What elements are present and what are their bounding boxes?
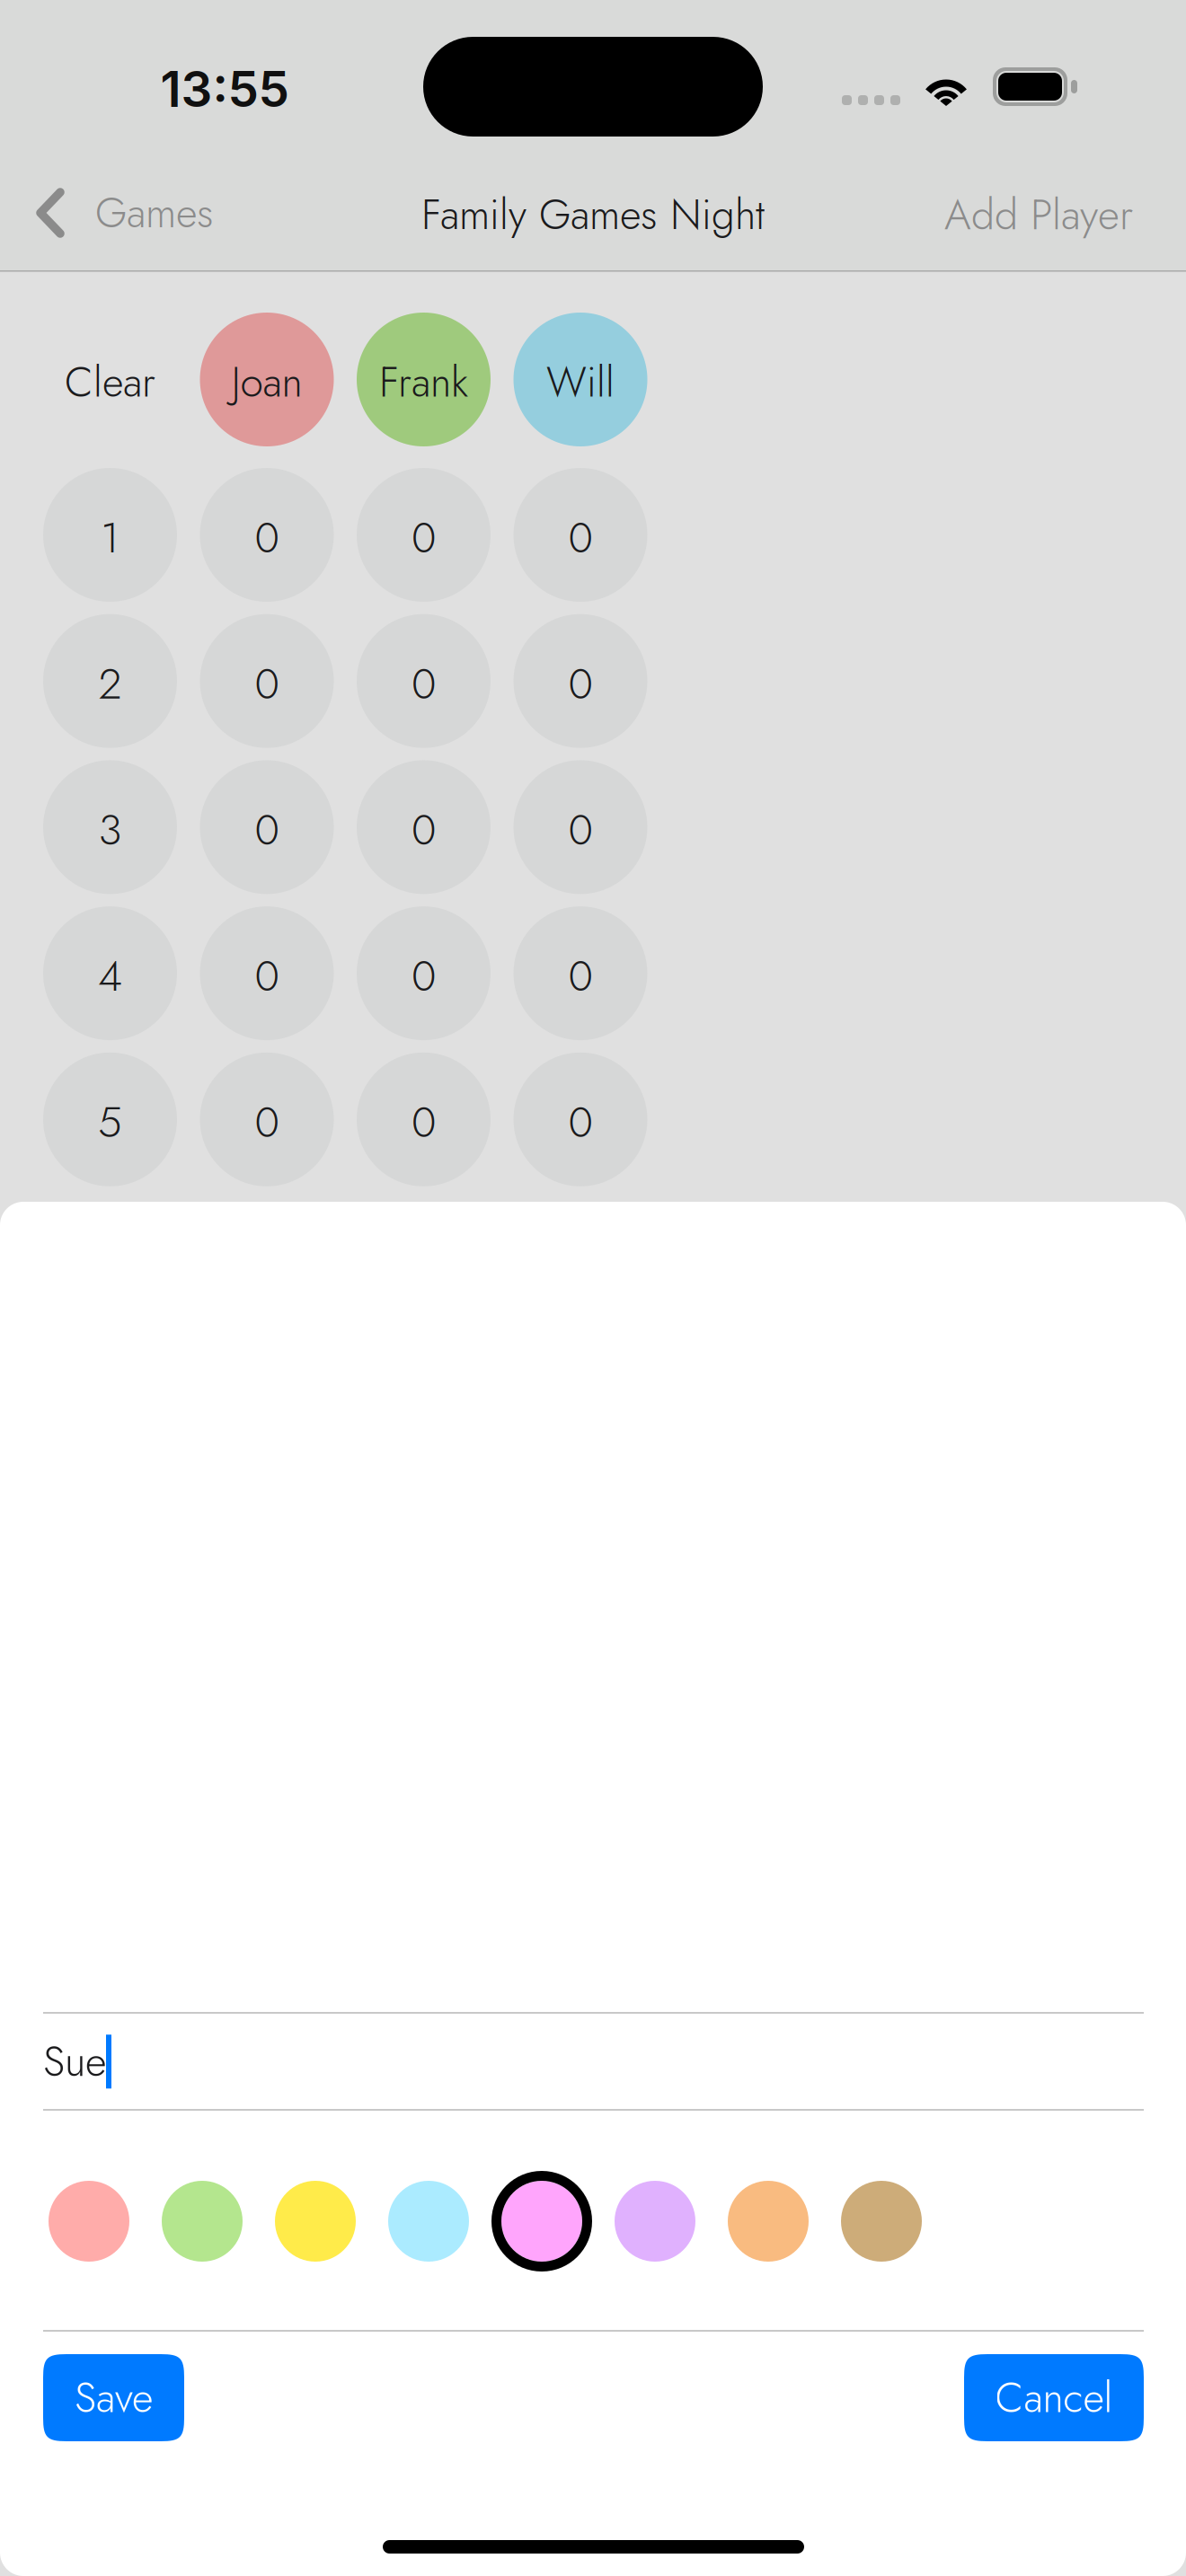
staticText: 0 <box>412 653 436 714</box>
button[interactable]: Add Player <box>890 166 1133 263</box>
staticText: 0 <box>568 1091 593 1153</box>
button[interactable]: Lavender <box>615 2181 695 2262</box>
button[interactable]: 0 <box>513 614 647 748</box>
button[interactable]: 4 <box>43 906 177 1040</box>
staticText: 0 <box>255 507 279 568</box>
staticText: 0 <box>255 653 279 714</box>
button[interactable]: Light blue <box>388 2181 469 2262</box>
button[interactable]: Joan <box>200 313 334 446</box>
button[interactable]: 0 <box>513 760 647 894</box>
staticText: Games <box>95 183 214 243</box>
button[interactable]: 0 <box>357 468 491 602</box>
button[interactable]: 0 <box>200 614 334 748</box>
button[interactable]: 2 <box>43 614 177 748</box>
staticText: Will <box>546 352 615 412</box>
button[interactable]: Will <box>513 313 647 446</box>
button[interactable]: 0 <box>200 1052 334 1186</box>
staticText: Sue <box>43 2032 106 2091</box>
button[interactable]: Clear <box>43 313 177 446</box>
button[interactable]: Orange <box>728 2181 809 2262</box>
button[interactable]: 1 <box>43 468 177 602</box>
staticText: 1 <box>101 507 119 568</box>
staticText: 2 <box>98 653 122 714</box>
button[interactable]: Pink <box>49 2181 129 2262</box>
staticText: Cancel <box>995 2368 1113 2428</box>
staticText: 0 <box>568 799 593 861</box>
button[interactable]: 0 <box>200 468 334 602</box>
staticText: 3 <box>98 799 122 861</box>
button[interactable]: Cancel <box>964 2354 1144 2441</box>
staticText: Family Games Night <box>421 185 765 245</box>
button[interactable]: 0 <box>200 906 334 1040</box>
button[interactable]: 0 <box>357 1052 491 1186</box>
staticText: 0 <box>568 653 593 714</box>
button[interactable]: Green <box>162 2181 243 2262</box>
button[interactable]: Games <box>35 164 251 261</box>
button[interactable]: 0 <box>357 760 491 894</box>
staticText: 0 <box>412 799 436 861</box>
staticText: 0 <box>412 945 436 1007</box>
staticText: 0 <box>255 1091 279 1153</box>
staticText: Add Player <box>944 184 1133 245</box>
staticText: 13:55 <box>160 59 289 119</box>
staticText: 0 <box>412 1091 436 1153</box>
staticText: 0 <box>255 945 279 1007</box>
button[interactable]: Yellow <box>275 2181 356 2262</box>
button[interactable]: 0 <box>513 1052 647 1186</box>
button[interactable]: Magenta, selected <box>501 2181 582 2262</box>
staticText: 5 <box>98 1091 122 1153</box>
staticText: 0 <box>255 799 279 861</box>
button[interactable]: 5 <box>43 1052 177 1186</box>
staticText: 4 <box>98 945 122 1007</box>
button[interactable]: Frank <box>357 313 491 446</box>
staticText: 0 <box>568 507 593 568</box>
button[interactable]: Tan <box>841 2181 922 2262</box>
button[interactable]: 0 <box>357 906 491 1040</box>
staticText: 0 <box>412 507 436 568</box>
staticText: Joan <box>231 352 302 412</box>
staticText: Clear <box>65 352 155 412</box>
button[interactable]: 0 <box>200 760 334 894</box>
staticText: Frank <box>379 352 468 412</box>
button[interactable]: Save <box>43 2354 184 2441</box>
staticText: Save <box>75 2368 153 2428</box>
staticText: 0 <box>568 945 593 1007</box>
button[interactable]: 3 <box>43 760 177 894</box>
button[interactable]: 0 <box>513 468 647 602</box>
button[interactable]: 0 <box>513 906 647 1040</box>
button[interactable]: 0 <box>357 614 491 748</box>
